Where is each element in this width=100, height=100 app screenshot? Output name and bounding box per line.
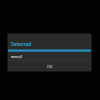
staticText: Selected [11, 41, 32, 48]
staticText: menu1 [11, 54, 23, 59]
button[interactable]: OK [8, 61, 91, 71]
staticText: OK [47, 64, 53, 69]
